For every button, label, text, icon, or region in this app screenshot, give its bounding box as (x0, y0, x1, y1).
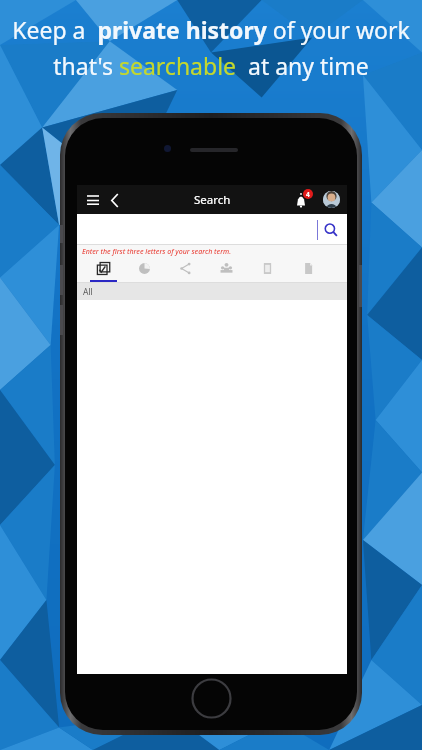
staticText: Enter the first three letters of your se… (82, 247, 232, 257)
staticText: Search (194, 192, 231, 208)
button[interactable]: All (77, 283, 347, 300)
button[interactable]: Back (105, 190, 125, 210)
button[interactable]: Reports (124, 259, 165, 283)
button[interactable]: Tasks (83, 259, 124, 283)
button[interactable]: Documents (288, 259, 329, 283)
button[interactable]: Profile (323, 191, 340, 208)
button[interactable]: Shared (165, 259, 206, 283)
staticText: Keep a private history of your work (12, 14, 410, 45)
staticText: that's searchable at any time (53, 50, 369, 81)
staticText: All (83, 286, 93, 298)
button[interactable]: Contacts (206, 259, 247, 283)
button[interactable]: Notifications (292, 189, 314, 211)
button[interactable]: Search (321, 220, 341, 240)
button[interactable]: Menu (82, 189, 104, 211)
button[interactable]: Archive (247, 259, 288, 283)
staticText: 4 (306, 190, 310, 199)
